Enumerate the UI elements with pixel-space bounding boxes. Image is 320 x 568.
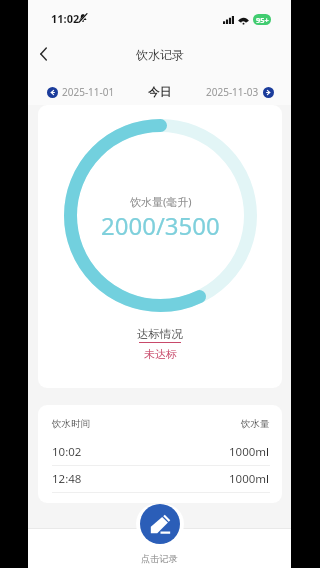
staticText: 饮水量(毫升)	[130, 194, 192, 209]
staticText: 达标情况	[137, 327, 183, 341]
staticText: 1000ml	[229, 444, 270, 460]
staticText: 2025-11-03	[206, 85, 259, 99]
staticText: 2000/3500	[101, 209, 220, 242]
button[interactable]: 今日	[148, 85, 171, 99]
staticText: 95+	[256, 15, 269, 25]
button[interactable]: Back	[30, 40, 57, 68]
button[interactable]: 10:02	[52, 439, 270, 465]
staticText: 饮水量	[241, 418, 270, 430]
button[interactable]: 2025-11-03	[204, 83, 276, 101]
button[interactable]: 12:48	[52, 466, 270, 492]
staticText: 点击记录	[141, 553, 178, 565]
staticText: 未达标	[144, 347, 177, 361]
staticText: 10:02	[52, 444, 82, 460]
button[interactable]: Add water record	[140, 504, 180, 544]
button[interactable]: 2025-11-01	[45, 83, 117, 101]
staticText: 饮水记录	[136, 47, 184, 62]
staticText: 1000ml	[229, 471, 270, 487]
staticText: 饮水时间	[52, 418, 90, 430]
staticText: 12:48	[52, 471, 82, 487]
staticText: 2025-11-01	[62, 85, 115, 99]
staticText: 11:02	[51, 11, 80, 26]
